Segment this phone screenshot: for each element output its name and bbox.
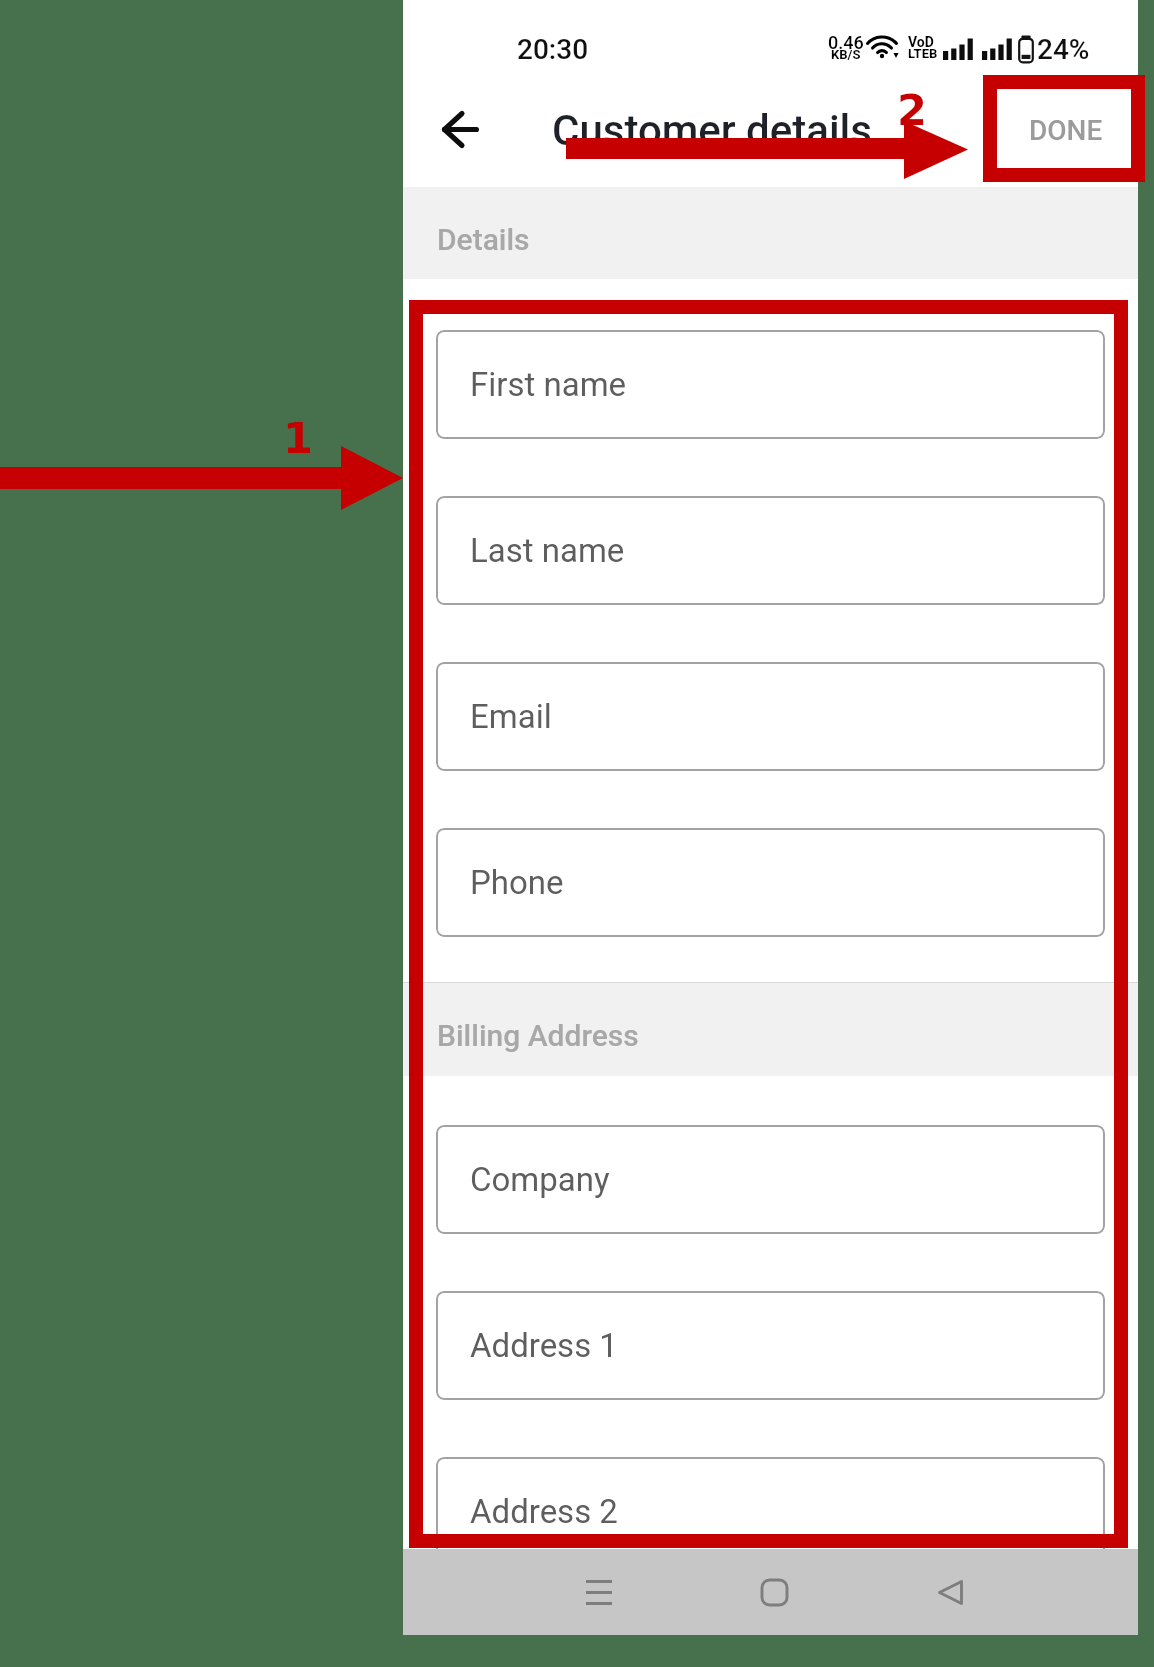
button[interactable]: Phone [436, 828, 1105, 937]
staticText: 24% [1037, 33, 1090, 66]
staticText: 1 [283, 413, 313, 463]
staticText: Company [470, 1160, 610, 1199]
staticText: 2 [897, 85, 927, 135]
button[interactable]: Last name [436, 496, 1105, 605]
button[interactable]: DONE [1003, 85, 1129, 175]
button[interactable]: Address 1 [436, 1291, 1105, 1400]
staticText: First name [470, 365, 627, 404]
staticText: Phone [470, 863, 564, 902]
staticText: Address 2 [470, 1492, 618, 1531]
staticText: 0.46 [828, 32, 864, 53]
staticText: Last name [470, 531, 625, 570]
button[interactable]: Back [905, 1549, 995, 1635]
staticText: Address 1 [470, 1326, 618, 1365]
staticText: 20:30 [517, 33, 589, 66]
button[interactable]: Address 2 [436, 1457, 1105, 1566]
button[interactable]: Home [729, 1549, 819, 1635]
button[interactable]: Company [436, 1125, 1105, 1234]
staticText: Billing Address [437, 1018, 639, 1053]
button[interactable]: Recent apps [554, 1549, 644, 1635]
staticText: Details [437, 222, 530, 257]
staticText: Customer details [552, 106, 872, 155]
staticText: Email [470, 697, 552, 736]
staticText: DONE [1029, 114, 1103, 147]
button[interactable]: First name [436, 330, 1105, 439]
staticText: KB/S [831, 47, 861, 62]
button[interactable]: Back [428, 94, 499, 165]
button[interactable]: Email [436, 662, 1105, 771]
staticText: VoD [908, 34, 934, 50]
staticText: LTEB [908, 46, 938, 61]
